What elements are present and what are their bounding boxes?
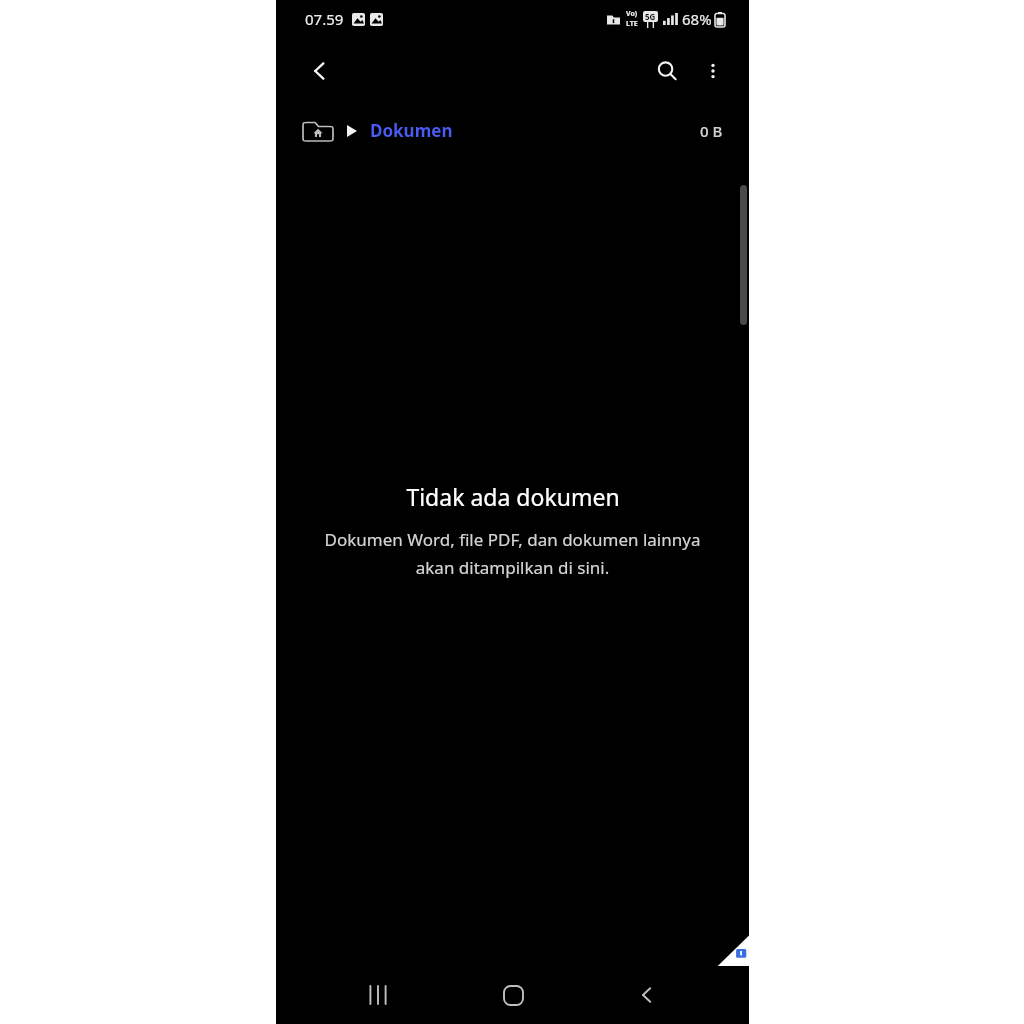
staticText: 68% <box>682 9 712 29</box>
staticText: 0 B <box>700 121 723 141</box>
staticText: 5G <box>645 11 656 22</box>
staticText: 07.59 <box>305 9 344 29</box>
button[interactable]: Home <box>481 966 545 1024</box>
button[interactable]: Search <box>643 47 691 95</box>
staticText: LTE <box>626 19 638 29</box>
button[interactable]: Back <box>296 47 344 95</box>
staticText: Vo) <box>626 9 638 19</box>
button[interactable]: Back <box>615 966 679 1024</box>
staticText: Dokumen Word, file PDF, dan dokumen lain… <box>316 528 709 579</box>
button[interactable]: More options <box>691 49 735 93</box>
button[interactable]: Home folder <box>302 118 334 144</box>
button[interactable]: Dokumen <box>370 119 453 142</box>
staticText: Dokumen <box>370 119 453 142</box>
button[interactable]: Recent apps <box>346 966 410 1024</box>
staticText: Tidak ada dokumen <box>406 481 620 512</box>
